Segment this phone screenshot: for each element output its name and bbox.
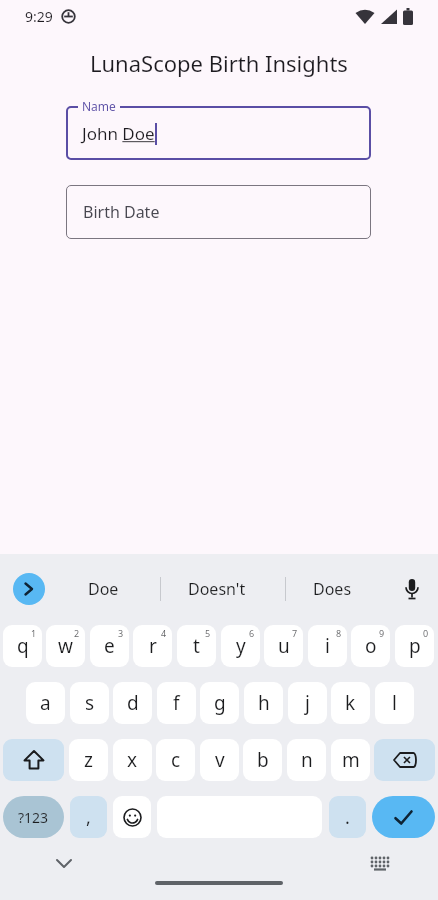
button[interactable]: o — [351, 625, 390, 667]
staticText: x — [127, 747, 138, 773]
staticText: g — [214, 690, 226, 716]
staticText: 0 — [423, 627, 429, 639]
staticText: m — [342, 747, 360, 773]
staticText: r — [149, 633, 157, 659]
button[interactable]: q — [3, 625, 42, 667]
button[interactable] — [3, 739, 64, 781]
staticText: p — [409, 633, 421, 659]
staticText: q — [17, 633, 29, 659]
button[interactable]: ?123 — [3, 796, 64, 838]
staticText: Birth Date — [83, 201, 160, 223]
button[interactable]: l — [375, 682, 414, 724]
staticText: e — [104, 633, 115, 659]
button[interactable]: m — [331, 739, 370, 781]
button[interactable]: j — [288, 682, 327, 724]
staticText: h — [258, 690, 270, 716]
button[interactable]: r — [133, 625, 172, 667]
staticText: Doesn't — [188, 578, 246, 600]
staticText: 5 — [205, 627, 211, 639]
staticText: w — [58, 633, 73, 659]
staticText: 3 — [118, 627, 124, 639]
staticText: John Doe — [82, 122, 155, 145]
button[interactable] — [113, 796, 151, 838]
button[interactable]: Doesn't — [162, 568, 272, 610]
button[interactable]: g — [200, 682, 239, 724]
staticText: Doe — [88, 578, 119, 600]
button[interactable]: b — [243, 739, 282, 781]
staticText: Name — [82, 98, 116, 114]
button[interactable]: i — [308, 625, 347, 667]
button[interactable]: d — [113, 682, 152, 724]
button[interactable]: . — [329, 796, 366, 838]
button[interactable]: x — [113, 739, 152, 781]
button[interactable]: f — [157, 682, 196, 724]
button[interactable] — [370, 856, 390, 872]
button[interactable] — [56, 859, 72, 868]
staticText: v — [215, 747, 225, 773]
staticText: k — [345, 690, 356, 716]
button[interactable]: u — [264, 625, 303, 667]
button[interactable]: e — [90, 625, 129, 667]
staticText: n — [301, 747, 313, 773]
staticText: 9 — [379, 627, 385, 639]
staticText: u — [278, 633, 290, 659]
staticText: b — [257, 747, 269, 773]
button[interactable]: h — [244, 682, 283, 724]
button[interactable] — [66, 106, 371, 160]
staticText: 2 — [74, 627, 80, 639]
button[interactable]: z — [69, 739, 108, 781]
staticText: f — [173, 690, 180, 716]
staticText: 4 — [161, 627, 167, 639]
button[interactable] — [374, 739, 435, 781]
staticText: c — [171, 747, 181, 773]
staticText: 8 — [336, 627, 342, 639]
button[interactable]: c — [156, 739, 195, 781]
staticText: d — [127, 690, 139, 716]
staticText: ?123 — [18, 808, 49, 827]
staticText: l — [392, 690, 397, 716]
staticText: a — [40, 690, 51, 716]
staticText: 9:29 — [25, 7, 53, 26]
staticText: 7 — [292, 627, 298, 639]
button[interactable]: n — [287, 739, 326, 781]
staticText: j — [305, 690, 310, 716]
staticText: i — [325, 633, 330, 659]
button[interactable]: k — [331, 682, 370, 724]
button[interactable]: y — [221, 625, 260, 667]
staticText: . — [345, 805, 350, 830]
button[interactable]: , — [70, 796, 107, 838]
staticText: Does — [313, 578, 352, 600]
staticText: LunaScope Birth Insights — [90, 48, 348, 78]
button[interactable]: v — [200, 739, 239, 781]
button[interactable]: w — [46, 625, 85, 667]
staticText: s — [85, 690, 95, 716]
button[interactable]: a — [26, 682, 65, 724]
staticText: 6 — [249, 627, 255, 639]
staticText: o — [365, 633, 377, 659]
button[interactable]: s — [70, 682, 109, 724]
button[interactable]: p — [395, 625, 434, 667]
button[interactable] — [13, 573, 45, 605]
button[interactable]: t — [177, 625, 216, 667]
button[interactable]: Doe — [48, 568, 158, 610]
button[interactable] — [66, 185, 371, 239]
button[interactable] — [372, 796, 435, 838]
staticText: 1 — [31, 627, 37, 639]
button[interactable]: Does — [277, 568, 387, 610]
staticText: y — [236, 633, 246, 659]
staticText: t — [193, 633, 200, 659]
staticText: z — [84, 747, 93, 773]
staticText: , — [86, 805, 91, 830]
